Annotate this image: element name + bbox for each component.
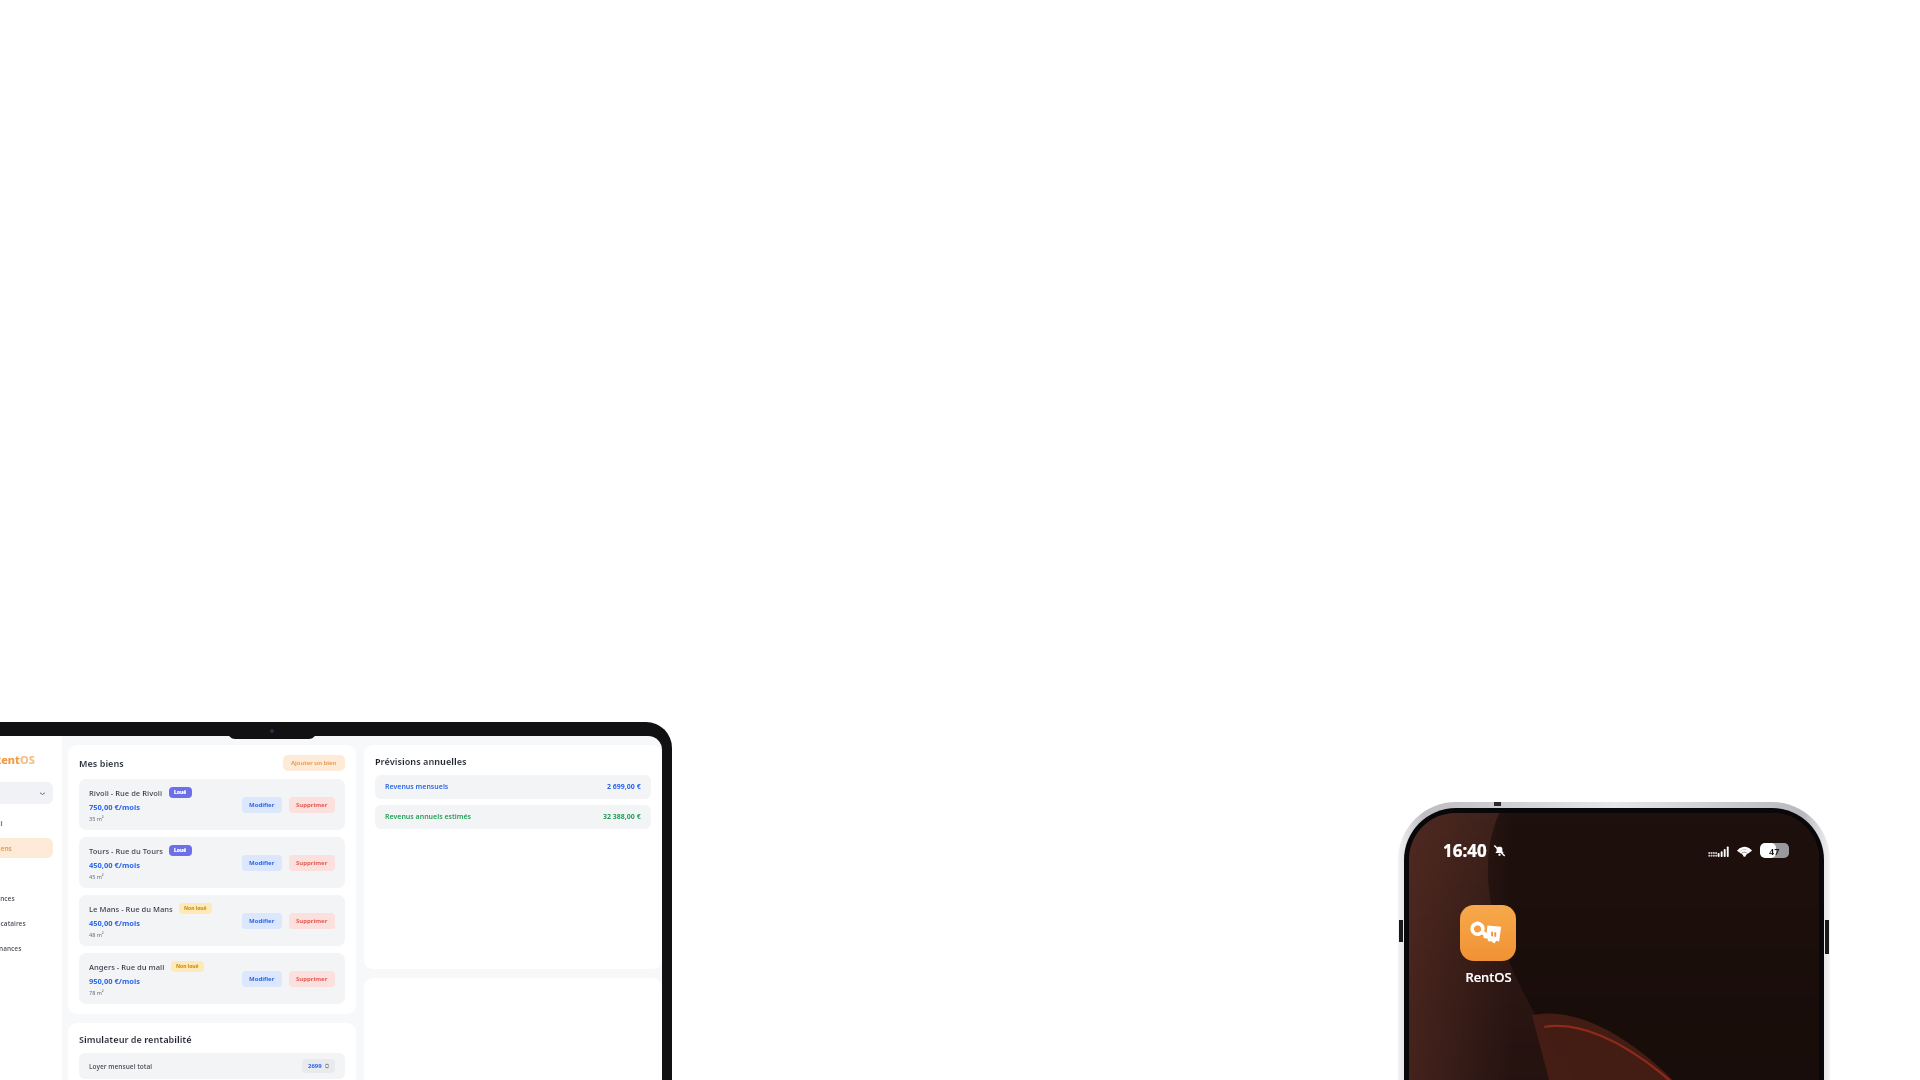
staticText: 2699 bbox=[308, 1062, 322, 1070]
button[interactable]: Quittances bbox=[0, 888, 53, 908]
staticText: Ajouter un bien bbox=[291, 759, 337, 767]
button[interactable]: Rivoli - Rue de Rivoli bbox=[79, 779, 345, 830]
other: RentOS bbox=[1460, 905, 1516, 961]
button[interactable]: Loyer mensuel total bbox=[79, 1053, 345, 1079]
button[interactable]: Revenus mensuels bbox=[375, 775, 651, 799]
staticText: 45 m² bbox=[89, 873, 104, 880]
staticText: Angers - Rue du mall bbox=[89, 962, 165, 972]
button[interactable]: Angers - Rue du mall bbox=[79, 953, 345, 1004]
staticText: Loyer mensuel total bbox=[89, 1062, 153, 1071]
button[interactable]: Modifier bbox=[242, 971, 282, 987]
staticText: Modifier bbox=[249, 975, 275, 983]
button[interactable]: Modifier bbox=[242, 855, 282, 871]
staticText: Loué bbox=[174, 847, 187, 854]
staticText: OS bbox=[20, 752, 35, 767]
staticText: Accueil bbox=[0, 819, 3, 828]
button[interactable]: Supprimer bbox=[289, 971, 335, 987]
button[interactable]: Accueil bbox=[0, 813, 53, 833]
staticText: Mes finances bbox=[0, 944, 22, 953]
button[interactable]: Rent bbox=[0, 752, 53, 767]
staticText: Modifier bbox=[249, 801, 275, 809]
staticText: Non loué bbox=[176, 963, 199, 970]
button[interactable]: Mes locataires bbox=[0, 913, 53, 933]
staticText: 78 m² bbox=[89, 989, 104, 996]
staticText: Revenus annuels estimés bbox=[385, 812, 472, 822]
staticText: 16:40 bbox=[1443, 839, 1487, 862]
staticText: 48 m² bbox=[89, 931, 104, 938]
staticText: Loué bbox=[174, 789, 187, 796]
staticText: Mes biens bbox=[0, 844, 12, 853]
button[interactable]: Tours - Rue du Tours bbox=[79, 837, 345, 888]
staticText: Modifier bbox=[249, 917, 275, 925]
staticText: Rivoli - Rue de Rivoli bbox=[89, 788, 163, 798]
staticText: Prévisions annuelles bbox=[375, 755, 467, 767]
button[interactable]: 2699 bbox=[302, 1059, 335, 1073]
staticText: Le Mans - Rue du Mans bbox=[89, 904, 173, 914]
staticText: Mes locataires bbox=[0, 919, 26, 928]
staticText: Simulateur de rentabilité bbox=[79, 1033, 192, 1045]
staticText: RentOS bbox=[1465, 968, 1512, 986]
button[interactable]: Mes finances bbox=[0, 938, 53, 958]
button[interactable]: RentOS bbox=[1453, 905, 1523, 986]
button[interactable]: Supprimer bbox=[289, 797, 335, 813]
staticText: Quittances bbox=[0, 894, 15, 903]
staticText: 2 699,00 € bbox=[607, 782, 641, 792]
button[interactable]: Supprimer bbox=[289, 855, 335, 871]
staticText: 950,00 €/mois bbox=[89, 976, 140, 986]
staticText: Non loué bbox=[184, 905, 207, 912]
staticText: 750,00 €/mois bbox=[89, 802, 140, 812]
button[interactable]: Le Mans - Rue du Mans bbox=[79, 895, 345, 946]
staticText: Supprimer bbox=[296, 975, 328, 983]
staticText: Revenus mensuels bbox=[385, 782, 449, 792]
staticText: 35 m² bbox=[89, 815, 104, 822]
staticText: 47 bbox=[1769, 845, 1780, 857]
button[interactable]: Antoine bbox=[0, 782, 53, 804]
button[interactable]: Revenus annuels estimés bbox=[375, 805, 651, 829]
button[interactable]: Modifier bbox=[242, 797, 282, 813]
button[interactable]: Mes biens bbox=[0, 838, 53, 858]
staticText: 32 388,00 € bbox=[603, 812, 641, 822]
staticText: 450,00 €/mois bbox=[89, 860, 140, 870]
staticText: Supprimer bbox=[296, 917, 328, 925]
button[interactable]: Modifier bbox=[242, 913, 282, 929]
staticText: Mes biens bbox=[79, 757, 124, 769]
button[interactable]: Ajouter un bien bbox=[283, 755, 345, 771]
staticText: Modifier bbox=[249, 859, 275, 867]
button[interactable]: Supprimer bbox=[289, 913, 335, 929]
staticText: 450,00 €/mois bbox=[89, 918, 140, 928]
staticText: Rent bbox=[0, 752, 20, 767]
staticText: Tours - Rue du Tours bbox=[89, 846, 163, 856]
staticText: Supprimer bbox=[296, 801, 328, 809]
staticText: Supprimer bbox=[296, 859, 328, 867]
